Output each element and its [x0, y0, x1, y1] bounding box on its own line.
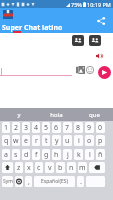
- staticText: d: [24, 150, 29, 160]
- staticText: j: [67, 150, 69, 160]
- staticText: 2: [14, 123, 19, 133]
- staticText: ,: [28, 177, 30, 187]
- staticText: 75%: [71, 1, 82, 8]
- button[interactable]: hola: [37, 108, 75, 121]
- staticText: x: [27, 163, 31, 173]
- button[interactable]: c: [35, 162, 43, 173]
- button[interactable]: 5: [42, 122, 50, 133]
- button[interactable]: o: [85, 135, 94, 146]
- button[interactable]: a: [2, 149, 10, 160]
- staticText: Sym: [3, 178, 13, 185]
- staticText: e: [24, 136, 28, 146]
- button[interactable]: m: [78, 162, 87, 173]
- staticText: 6: [54, 123, 59, 133]
- button[interactable]: 2: [12, 122, 20, 133]
- staticText: h: [54, 150, 59, 160]
- staticText: ñ: [98, 150, 103, 160]
- button[interactable]: y: [0, 108, 37, 121]
- button[interactable]: i: [74, 135, 83, 146]
- button[interactable]: 6: [52, 122, 61, 133]
- staticText: p: [98, 136, 103, 146]
- button[interactable]: Share: [96, 16, 106, 26]
- button[interactable]: 4: [32, 122, 40, 133]
- button[interactable]: y: [52, 135, 61, 146]
- staticText: b: [58, 163, 63, 173]
- button[interactable]: Sym: [2, 176, 13, 187]
- staticText: v: [48, 163, 52, 173]
- staticText: y: [55, 136, 59, 146]
- button[interactable]: .: [77, 176, 84, 187]
- button[interactable]: v: [45, 162, 54, 173]
- staticText: w: [13, 136, 19, 146]
- staticText: t: [45, 136, 48, 146]
- button[interactable]: Send: [98, 66, 111, 79]
- button[interactable]: w: [12, 135, 20, 146]
- staticText: l: [89, 150, 91, 160]
- staticText: 4: [34, 123, 39, 133]
- button[interactable]: k: [74, 149, 83, 160]
- staticText: 3: [24, 123, 29, 133]
- button[interactable]: n: [67, 162, 76, 173]
- button[interactable]: que: [75, 108, 113, 121]
- button[interactable]: g: [42, 149, 50, 160]
- button[interactable]: Contacts: [72, 35, 84, 46]
- staticText: n: [69, 163, 74, 173]
- button[interactable]: f: [32, 149, 40, 160]
- staticText: hola: [50, 111, 63, 119]
- staticText: g: [44, 150, 49, 160]
- staticText: r: [35, 136, 38, 146]
- button[interactable]: ñ: [96, 149, 105, 160]
- staticText: 5: [44, 123, 49, 133]
- staticText: Super Chat latino: [2, 23, 63, 33]
- staticText: q: [4, 136, 9, 146]
- button[interactable]: 8: [74, 122, 83, 133]
- button[interactable]: x: [25, 162, 33, 173]
- staticText: u: [65, 136, 70, 146]
- button[interactable]: j: [63, 149, 72, 160]
- button[interactable]: Profile: [3, 10, 13, 19]
- button[interactable]: Español(ES): [34, 176, 75, 187]
- staticText: y: [17, 111, 21, 119]
- staticText: 9: [87, 123, 92, 133]
- button[interactable]: r: [32, 135, 40, 146]
- button[interactable]: h: [52, 149, 61, 160]
- staticText: a: [4, 150, 8, 160]
- button[interactable]: Sound: [96, 53, 103, 59]
- button[interactable]: Attach image: [76, 66, 85, 74]
- button[interactable]: Emoji: [86, 66, 94, 74]
- staticText: 1: [4, 123, 9, 133]
- button[interactable]: Shift: [2, 162, 13, 173]
- button[interactable]: 7: [63, 122, 72, 133]
- staticText: 0: [98, 123, 103, 133]
- staticText: k: [77, 150, 81, 160]
- staticText: 7: [65, 123, 70, 133]
- button[interactable]: s: [12, 149, 20, 160]
- staticText: 10:19 PM: [87, 1, 111, 8]
- staticText: o: [87, 136, 92, 146]
- button[interactable]: 1: [2, 122, 10, 133]
- staticText: que: [89, 111, 100, 119]
- staticText: f: [35, 150, 38, 160]
- button[interactable]: q: [2, 135, 10, 146]
- button[interactable]: 3: [22, 122, 30, 133]
- button[interactable]: 0: [96, 122, 105, 133]
- staticText: Español(ES): [41, 178, 68, 185]
- button[interactable]: Contacts: [89, 35, 101, 46]
- staticText: s: [14, 150, 18, 160]
- staticText: m: [79, 163, 86, 173]
- button[interactable]: Backspace: [89, 162, 105, 173]
- button[interactable]: b: [56, 162, 65, 173]
- button[interactable]: u: [63, 135, 72, 146]
- button[interactable]: ,: [25, 176, 32, 187]
- button[interactable]: d: [22, 149, 30, 160]
- button[interactable]: z: [15, 162, 23, 173]
- button[interactable]: l: [85, 149, 94, 160]
- button[interactable]: p: [96, 135, 105, 146]
- staticText: i: [78, 136, 80, 146]
- button[interactable]: e: [22, 135, 30, 146]
- button[interactable]: t: [42, 135, 50, 146]
- button[interactable]: 9: [85, 122, 94, 133]
- staticText: c: [37, 163, 41, 173]
- button[interactable]: Settings: [15, 176, 23, 187]
